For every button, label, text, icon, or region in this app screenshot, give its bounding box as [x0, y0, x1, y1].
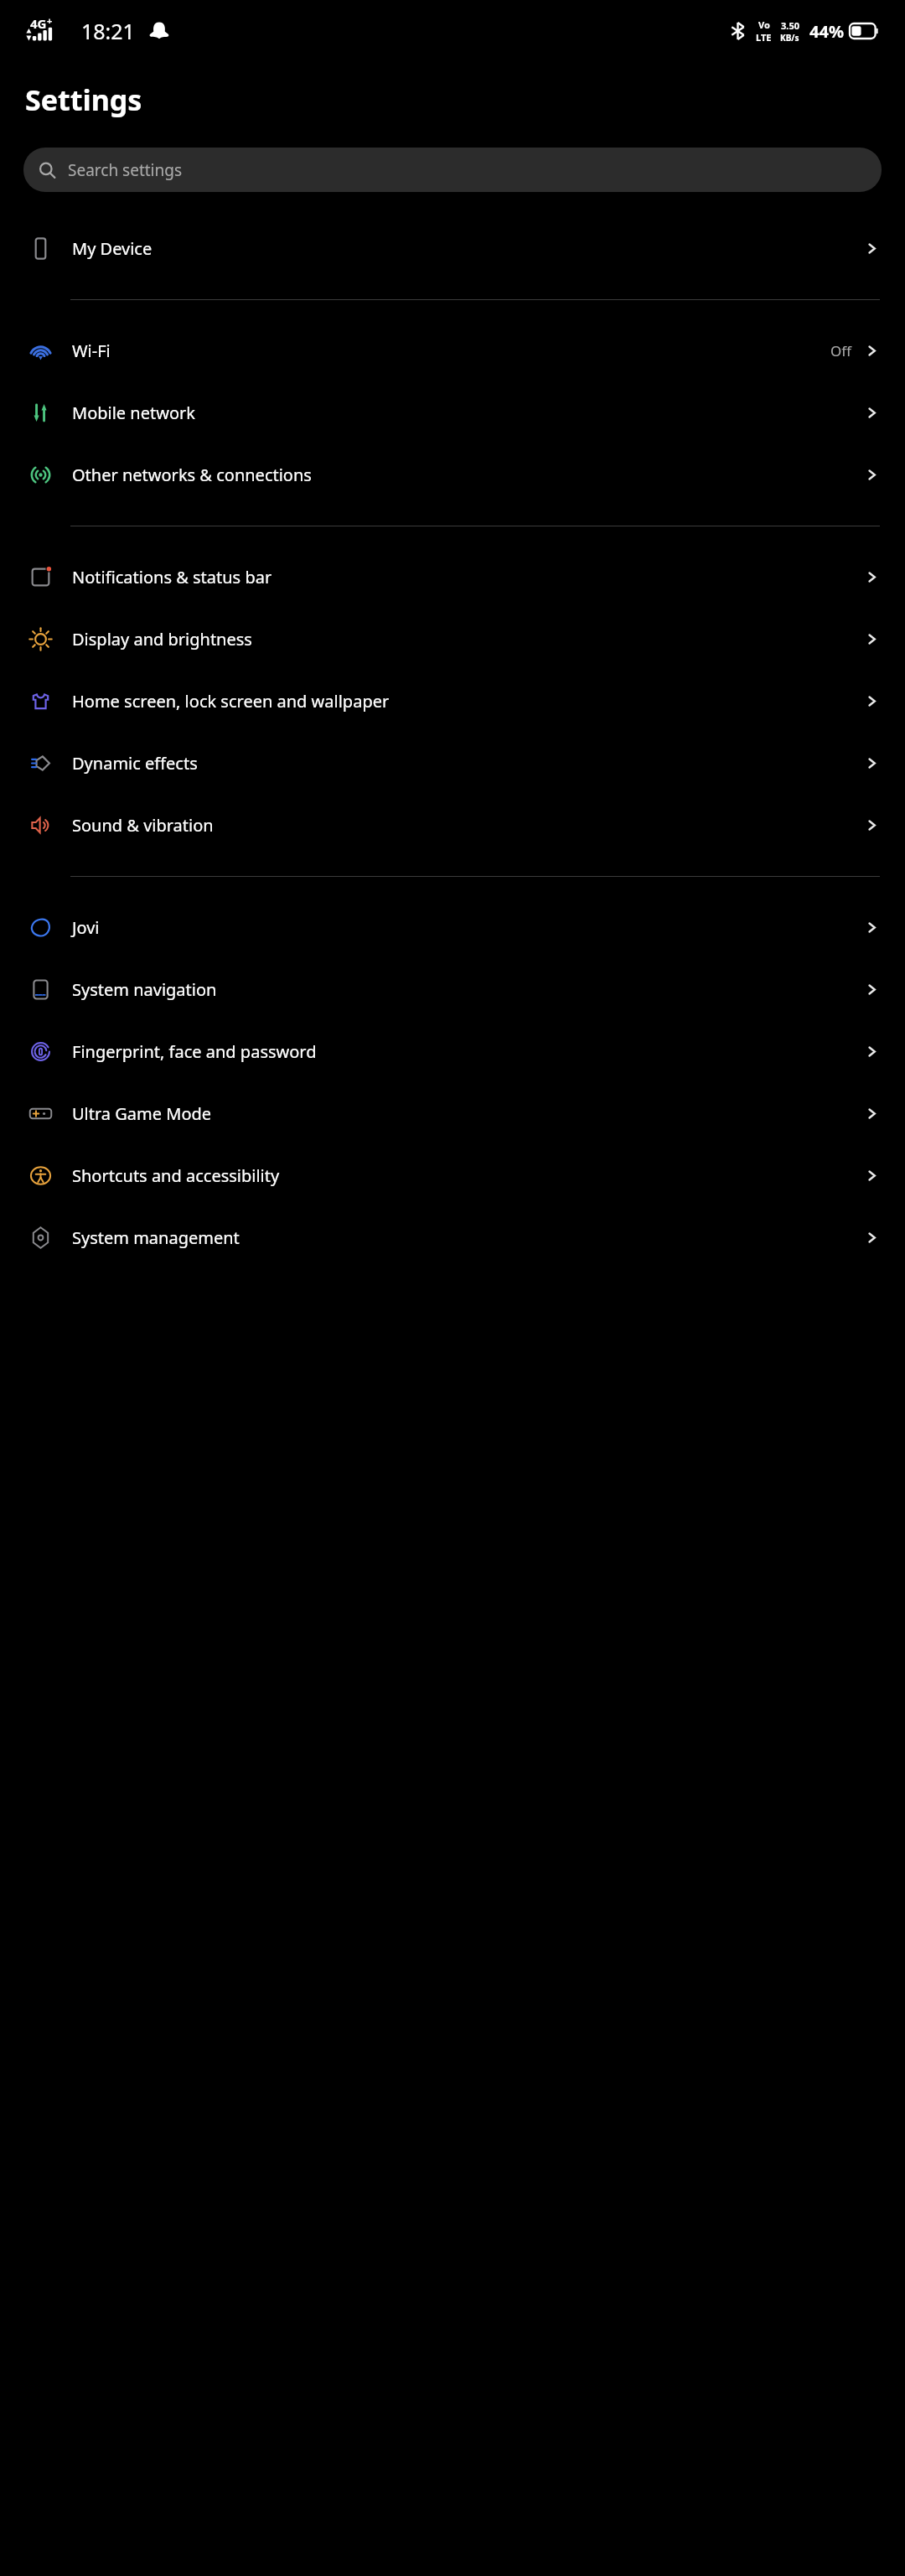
button[interactable]: System management — [0, 1206, 905, 1268]
button[interactable]: Display and brightness — [0, 608, 905, 670]
staticText: System navigation — [72, 978, 217, 1001]
staticText: Display and brightness — [72, 628, 252, 650]
button[interactable]: Shortcuts and accessibility — [0, 1144, 905, 1206]
staticText: Sound & vibration — [72, 814, 214, 837]
staticText: System management — [72, 1226, 240, 1249]
staticText: Home screen, lock screen and wallpaper — [72, 690, 390, 713]
staticText: KB/s — [780, 32, 799, 44]
button[interactable]: Wi-Fi — [0, 319, 905, 381]
staticText: Wi-Fi — [72, 339, 111, 362]
button[interactable]: Fingerprint, face and password — [0, 1020, 905, 1082]
button[interactable]: Notifications & status bar — [0, 546, 905, 608]
staticText: 4G — [30, 15, 47, 32]
staticText: Ultra Game Mode — [72, 1102, 212, 1125]
button[interactable]: Ultra Game Mode — [0, 1082, 905, 1144]
staticText: Jovi — [72, 916, 100, 939]
button[interactable]: Search settings — [23, 148, 882, 192]
staticText: LTE — [756, 31, 772, 44]
staticText: Other networks & connections — [72, 464, 312, 486]
staticText: Notifications & status bar — [72, 566, 272, 588]
button[interactable]: My Device — [0, 217, 905, 279]
button[interactable]: Jovi — [0, 896, 905, 958]
button[interactable]: Home screen, lock screen and wallpaper — [0, 670, 905, 732]
staticText: Fingerprint, face and password — [72, 1040, 317, 1063]
button[interactable]: System navigation — [0, 958, 905, 1020]
staticText: Shortcuts and accessibility — [72, 1164, 280, 1187]
staticText: Dynamic effects — [72, 752, 198, 775]
button[interactable]: Sound & vibration — [0, 794, 905, 856]
button[interactable]: Dynamic effects — [0, 732, 905, 794]
staticText: Vo — [758, 18, 770, 31]
staticText: + — [47, 14, 53, 27]
staticText: My Device — [72, 237, 153, 260]
staticText: Mobile network — [72, 402, 195, 424]
staticText: Search settings — [68, 159, 183, 181]
button[interactable]: Mobile network — [0, 381, 905, 443]
button[interactable]: Other networks & connections — [0, 443, 905, 505]
staticText: Off — [830, 341, 851, 360]
staticText: 3.50 — [781, 19, 799, 32]
staticText: 18:21 — [81, 17, 135, 45]
staticText: 44% — [809, 20, 844, 43]
staticText: Settings — [25, 80, 142, 119]
